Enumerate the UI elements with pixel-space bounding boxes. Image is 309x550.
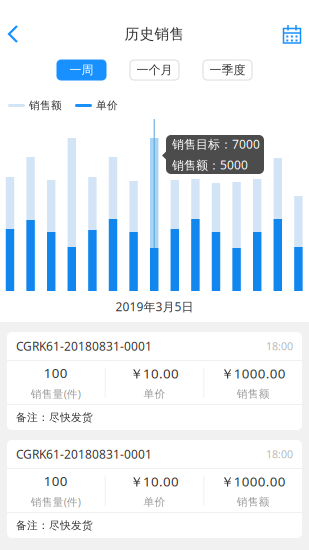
staticText: 100 (44, 472, 68, 490)
button[interactable]: 一季度 (203, 60, 252, 80)
staticText: 18:00 (266, 447, 293, 461)
staticText: 备注：尽快发货 (16, 411, 93, 424)
button[interactable]: Calendar (276, 18, 308, 50)
button[interactable]: Back (2, 18, 32, 50)
staticText: 销售目标：7000 (172, 136, 260, 152)
staticText: 一个月 (136, 63, 172, 77)
staticText: CGRK61-20180831-0001 (16, 338, 152, 354)
staticText: 销售额 (237, 387, 270, 400)
staticText: ￥10.00 (130, 473, 179, 490)
staticText: 18:00 (266, 339, 293, 353)
staticText: 销售量(件) (31, 495, 81, 509)
staticText: 销售额 (29, 99, 62, 112)
staticText: 销售额：5000 (172, 157, 248, 173)
staticText: 历史销售 (124, 25, 184, 43)
staticText: 备注：尽快发货 (16, 519, 93, 532)
staticText: ￥1000.00 (221, 473, 286, 490)
staticText: CGRK61-20180831-0001 (16, 446, 152, 462)
staticText: 2019年3月5日 (115, 298, 193, 314)
staticText: 一季度 (209, 63, 245, 77)
button[interactable]: 一周 (57, 60, 106, 80)
staticText: ￥10.00 (130, 365, 179, 382)
staticText: 单价 (143, 387, 165, 400)
button[interactable]: 一个月 (130, 60, 179, 80)
staticText: 一周 (69, 63, 93, 77)
staticText: 销售额 (237, 495, 270, 508)
staticText: 销售量(件) (31, 387, 81, 401)
staticText: ￥1000.00 (221, 365, 286, 382)
staticText: 单价 (143, 495, 165, 508)
staticText: 100 (44, 364, 68, 382)
staticText: 单价 (96, 99, 118, 112)
